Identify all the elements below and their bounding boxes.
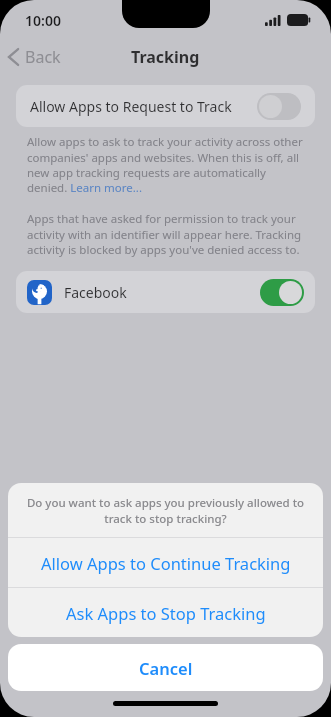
staticText: Do you want to ask apps you previously a…: [26, 495, 305, 526]
staticText: f: [36, 280, 43, 305]
staticText: Back: [25, 46, 61, 68]
button[interactable]: Toggle on: [260, 279, 304, 306]
button[interactable]: f: [16, 271, 315, 313]
staticText: Cancel: [139, 657, 193, 679]
button[interactable]: Ask Apps to Stop Tracking: [8, 588, 323, 637]
staticText: Allow Apps to Request to Track: [30, 97, 257, 116]
button[interactable]: Allow Apps to Request to Track: [16, 85, 315, 127]
staticText: Facebook: [64, 283, 260, 302]
staticText: Ask Apps to Stop Tracking: [66, 602, 266, 624]
staticText: 10:00: [25, 11, 61, 30]
button[interactable]: Back: [0, 42, 69, 72]
staticText: Allow apps to ask to track your activity…: [27, 134, 304, 195]
button[interactable]: Toggle off: [257, 93, 301, 120]
staticText: Apps that have asked for permission to t…: [27, 211, 304, 257]
staticText: Tracking: [131, 46, 200, 68]
button[interactable]: Allow Apps to Continue Tracking: [8, 538, 323, 587]
staticText: Allow Apps to Continue Tracking: [41, 552, 291, 574]
button[interactable]: Cancel: [8, 644, 323, 691]
